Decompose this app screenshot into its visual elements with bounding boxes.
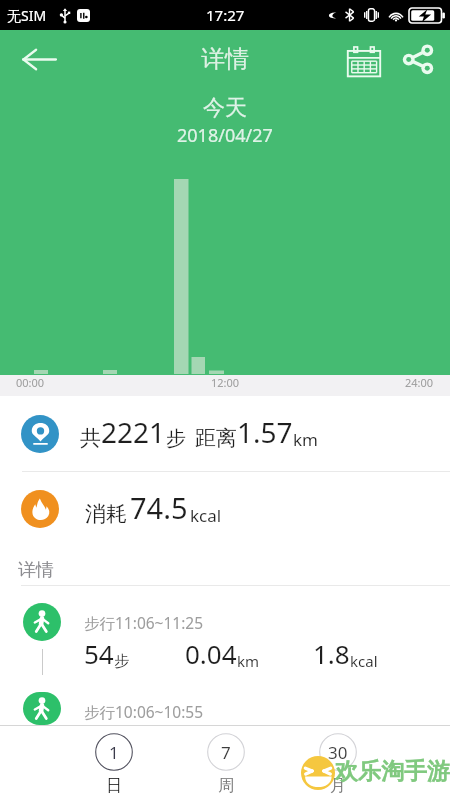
staticText: 今天 (203, 94, 247, 122)
staticText: 步 (166, 426, 186, 451)
staticText: 周 (218, 776, 234, 796)
staticText: km (293, 428, 318, 451)
staticText: 1 (109, 741, 119, 764)
button[interactable]: 步行11:06~11:25 (0, 586, 450, 675)
button[interactable]: Back (13, 33, 65, 85)
staticText: 0.04 (185, 636, 237, 671)
staticText: 2221 (101, 413, 166, 451)
staticText: 30 (328, 741, 348, 764)
button[interactable]: 共 (0, 396, 450, 471)
staticText: 00:00 (16, 375, 45, 390)
button[interactable]: 消耗 (0, 472, 450, 546)
staticText: 2018/04/27 (177, 123, 273, 148)
staticText: 无SIM (7, 6, 47, 25)
staticText: 共 (80, 425, 101, 451)
staticText: 步行11:06~11:25 (84, 612, 204, 633)
staticText: 欢乐淘手游 (335, 757, 450, 786)
staticText: 7 (221, 741, 231, 764)
staticText: kcal (350, 651, 378, 671)
staticText: 日 (106, 776, 122, 796)
button[interactable]: 步行10:06~10:55 (0, 675, 450, 725)
staticText: 步 (114, 652, 129, 671)
staticText: 17:27 (206, 5, 245, 25)
staticText: 详情 (18, 559, 54, 582)
staticText: 月 (330, 776, 346, 796)
button[interactable]: 1 (57, 726, 170, 800)
staticText: 24:00 (405, 375, 434, 390)
staticText: 54 (84, 636, 114, 671)
button[interactable]: Share (395, 36, 441, 82)
button[interactable]: 30 (282, 726, 394, 800)
staticText: km (237, 651, 260, 671)
staticText: 消耗 (85, 501, 127, 527)
staticText: 距离 (195, 425, 237, 451)
staticText: 1.8 (313, 636, 350, 671)
staticText: 步行10:06~10:55 (84, 701, 204, 722)
button[interactable]: 7 (170, 726, 282, 800)
button[interactable]: Calendar (341, 38, 387, 84)
staticText: 74.5 (130, 488, 188, 527)
staticText: kcal (190, 504, 222, 527)
staticText: 详情 (201, 44, 249, 74)
staticText: 1.57 (237, 413, 293, 451)
staticText: 12:00 (211, 375, 240, 390)
